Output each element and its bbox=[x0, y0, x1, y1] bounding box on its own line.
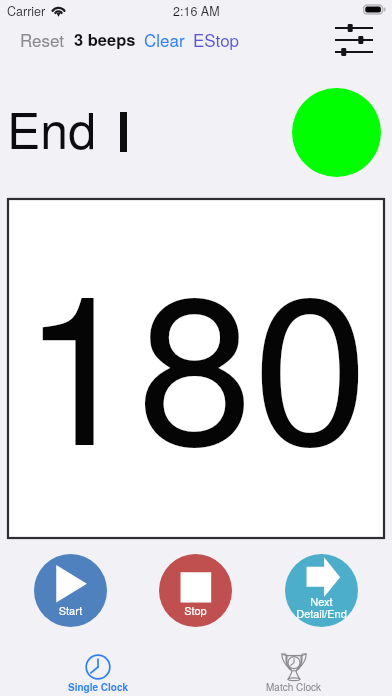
button[interactable]: Stop bbox=[159, 554, 232, 627]
staticText: Match Clock bbox=[266, 680, 322, 694]
button[interactable]: Adjust settings bbox=[330, 19, 378, 59]
staticText: Start bbox=[34, 602, 107, 618]
staticText: Carrier bbox=[7, 2, 46, 20]
staticText: End bbox=[7, 92, 96, 164]
button[interactable]: Match Clock bbox=[196, 640, 392, 694]
button[interactable]: Reset bbox=[20, 27, 65, 51]
button[interactable]: Start bbox=[34, 554, 107, 627]
staticText: Reset bbox=[20, 27, 65, 51]
staticText: Clear bbox=[144, 27, 185, 51]
staticText: 3 beeps bbox=[74, 27, 136, 51]
staticText: EStop bbox=[193, 27, 240, 51]
staticText: Stop bbox=[159, 602, 232, 618]
button[interactable]: Clear bbox=[144, 27, 185, 51]
staticText: 2:16 AM bbox=[173, 2, 220, 20]
button[interactable]: 3 beeps bbox=[74, 27, 136, 51]
staticText: Single Clock bbox=[68, 680, 129, 694]
button[interactable]: Next Detail/End bbox=[285, 554, 358, 627]
button[interactable]: EStop bbox=[193, 27, 240, 51]
staticText: Next Detail/End bbox=[285, 593, 358, 621]
button[interactable]: Single Clock bbox=[0, 640, 196, 694]
staticText: 180 bbox=[7, 206, 383, 504]
